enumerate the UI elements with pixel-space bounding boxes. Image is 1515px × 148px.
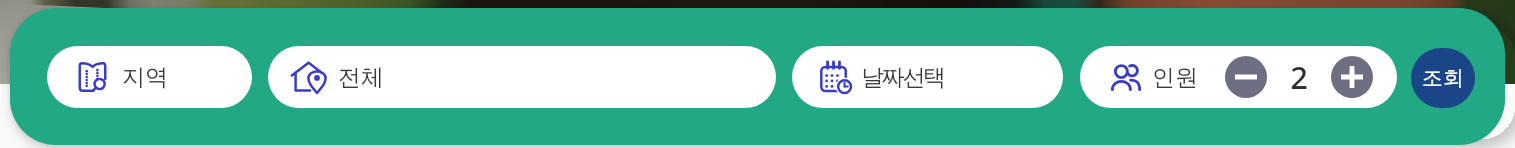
staticText: 인원	[1152, 63, 1198, 92]
button[interactable]: 조회	[1411, 48, 1475, 108]
button[interactable]: 날짜선택	[792, 46, 1063, 108]
button[interactable]: 전체	[268, 46, 776, 108]
button[interactable]: Increase number of guests	[1331, 56, 1373, 98]
staticText: 지역	[122, 63, 168, 92]
button[interactable]: 지역	[47, 46, 252, 108]
staticText: 2	[1290, 56, 1308, 98]
staticText: 조회	[1422, 65, 1464, 91]
staticText: 전체	[338, 63, 384, 92]
button[interactable]: Decrease number of guests	[1225, 56, 1267, 98]
staticText: 날짜선택	[861, 63, 944, 92]
